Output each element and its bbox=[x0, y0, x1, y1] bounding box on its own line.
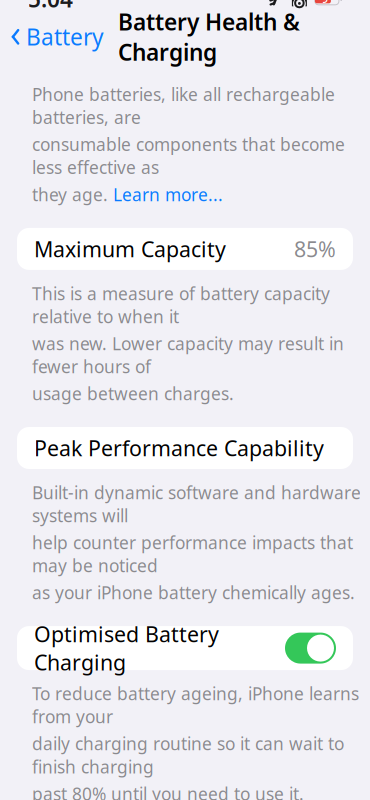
button[interactable]: Maximum Capacity bbox=[17, 228, 353, 270]
staticText: This is a measure of battery capacity re… bbox=[32, 282, 330, 328]
staticText: help counter performance impacts that ma… bbox=[32, 531, 353, 577]
staticText: consumable components that become less e… bbox=[32, 133, 345, 179]
staticText: as your iPhone battery chemically ages. bbox=[32, 581, 355, 604]
staticText: they age. bbox=[32, 183, 113, 206]
staticText: usage between charges. bbox=[32, 382, 234, 405]
staticText: Peak Performance Capability bbox=[34, 434, 324, 462]
staticText: Built-in dynamic software and hardware s… bbox=[32, 481, 361, 527]
button[interactable]: Learn more... bbox=[113, 183, 223, 206]
button[interactable]: Optimised Battery Charging bbox=[285, 633, 336, 664]
staticText: daily charging routine so it can wait to… bbox=[32, 732, 344, 778]
staticText: Phone batteries, like all rechargeable b… bbox=[32, 83, 335, 129]
staticText: 9 bbox=[322, 0, 328, 6]
staticText: 85% bbox=[294, 235, 336, 263]
staticText: past 80% until you need to use it. bbox=[32, 782, 304, 800]
staticText: To reduce battery ageing, iPhone learns … bbox=[32, 682, 359, 728]
button[interactable]: Peak Performance Capability bbox=[17, 427, 353, 469]
staticText: Battery Health & Charging bbox=[118, 7, 300, 67]
staticText: was new. Lower capacity may result in fe… bbox=[32, 332, 344, 378]
button[interactable]: Battery bbox=[0, 16, 104, 58]
staticText: Optimised Battery Charging bbox=[34, 620, 219, 676]
staticText: Learn more... bbox=[113, 183, 223, 206]
staticText: Battery bbox=[26, 22, 104, 52]
staticText: 5:04 bbox=[28, 0, 73, 14]
staticText: Maximum Capacity bbox=[34, 235, 226, 263]
